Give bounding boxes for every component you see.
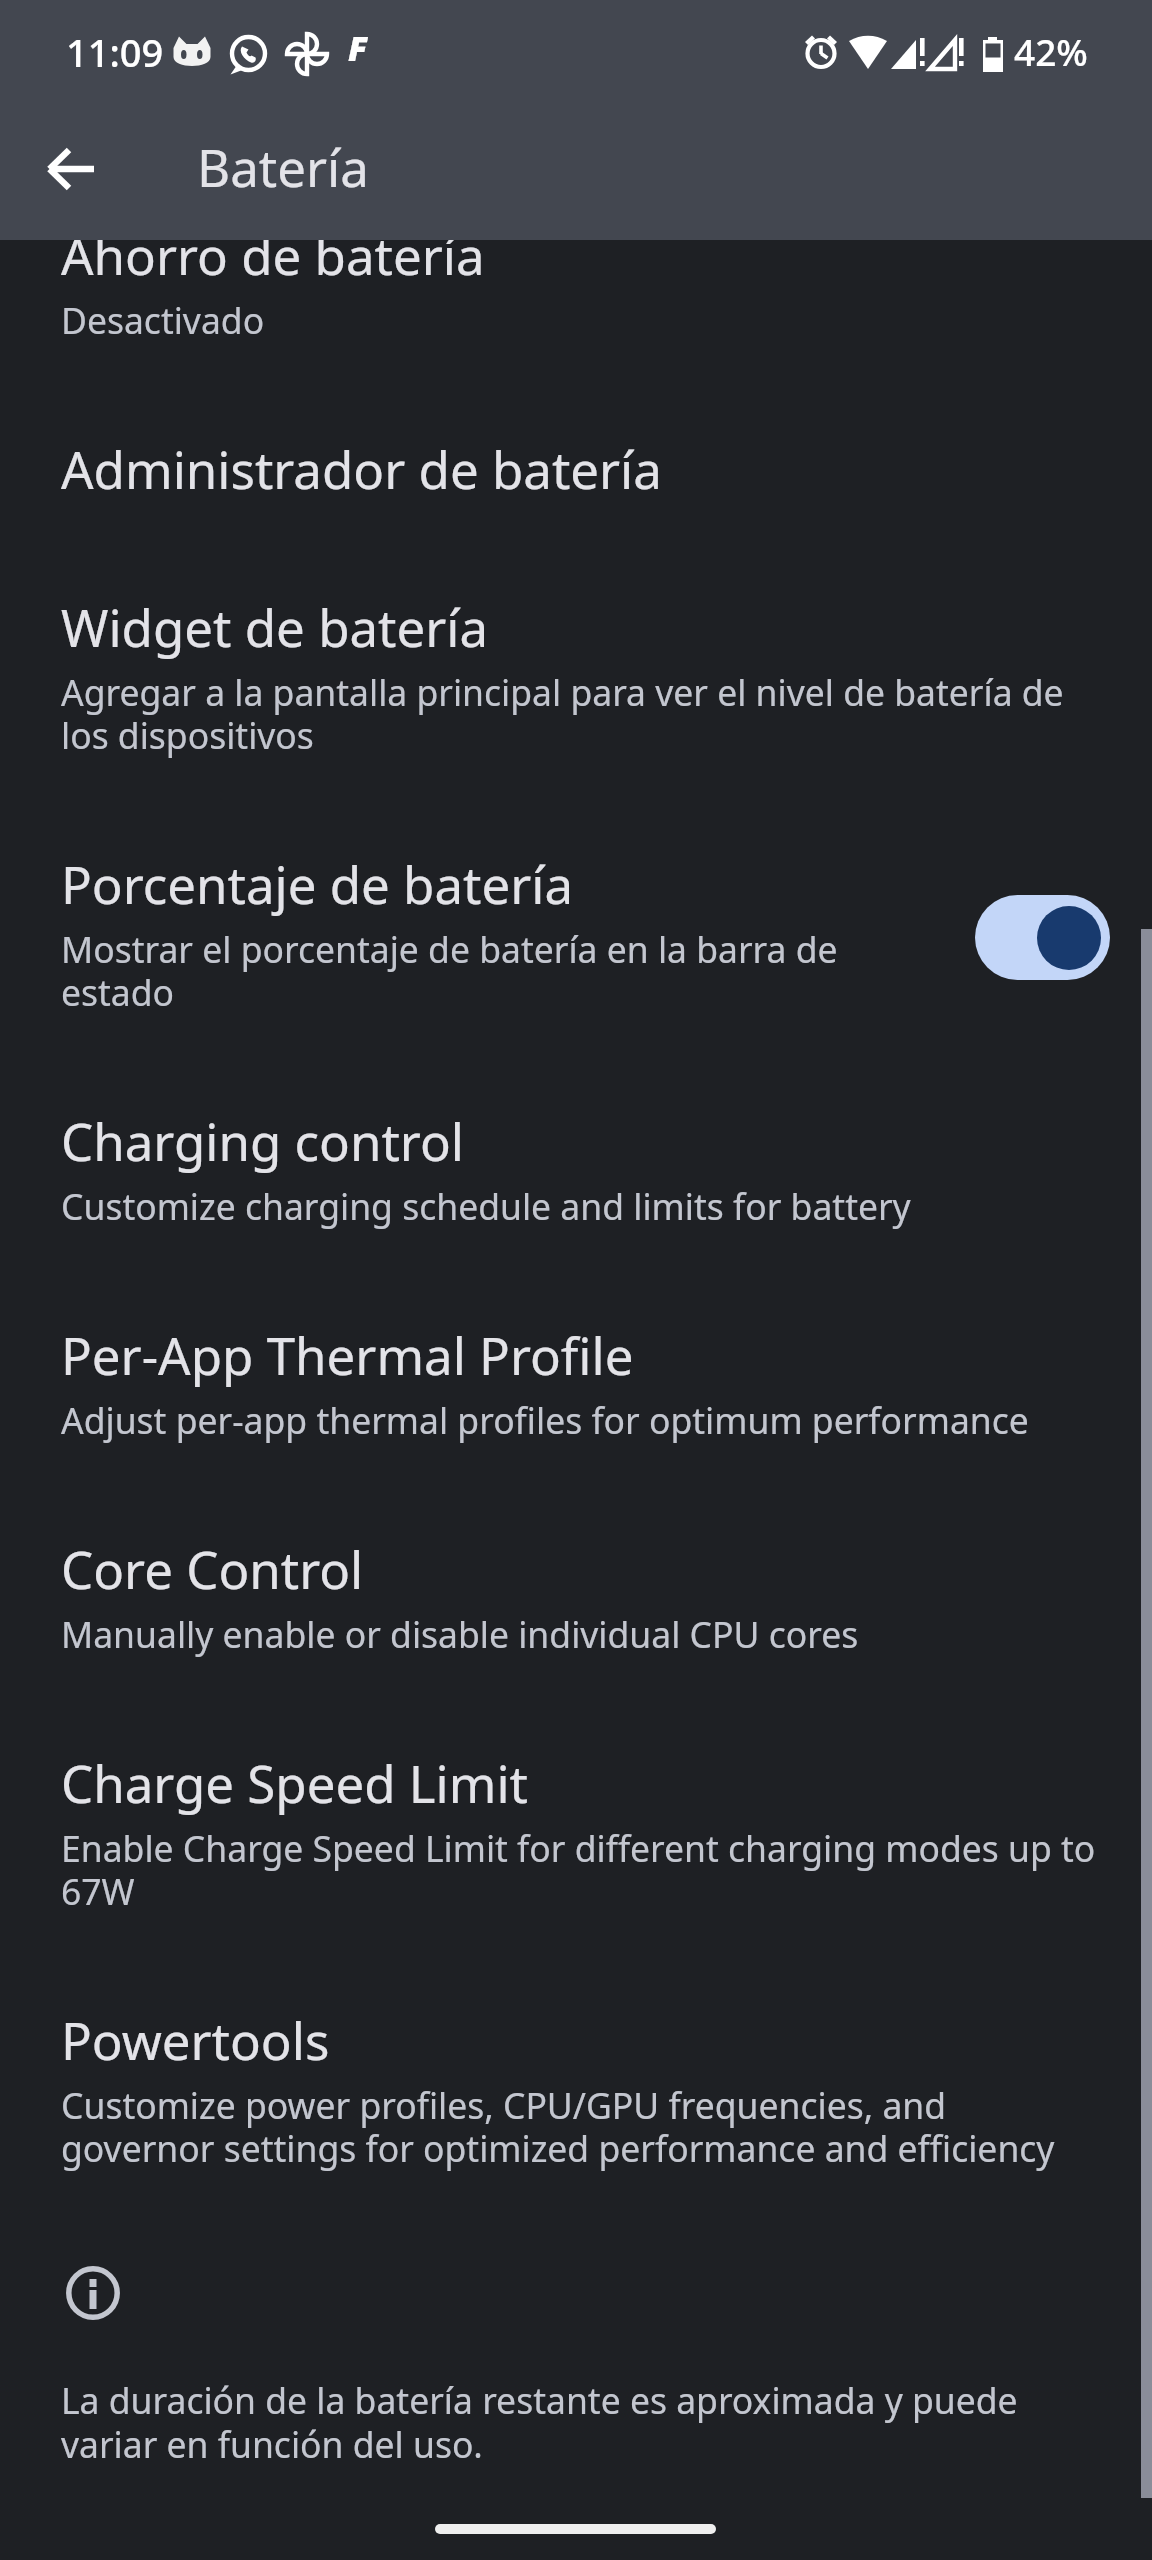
button[interactable]: Widget de batería (0, 551, 1152, 808)
button[interactable]: Ahorro de batería (0, 179, 1152, 393)
button[interactable]: Core Control (0, 1493, 1152, 1707)
staticText: Batería (197, 141, 369, 199)
staticText: Ahorro de batería (61, 229, 485, 287)
staticText: Per-App Thermal Profile (61, 1329, 634, 1387)
button[interactable]: Per-App Thermal Profile (0, 1279, 1152, 1493)
staticText: Manually enable or disable individual CP… (61, 1614, 1101, 1657)
staticText: 11:09 (66, 36, 164, 76)
staticText: Widget de batería (61, 601, 489, 659)
staticText: Agregar a la pantalla principal para ver… (61, 672, 1101, 758)
staticText: Charge Speed Limit (61, 1757, 528, 1815)
staticText: Customize charging schedule and limits f… (61, 1186, 1101, 1229)
staticText: Mostrar el porcentaje de batería en la b… (61, 929, 901, 1015)
staticText: Core Control (61, 1543, 364, 1601)
button[interactable]: Porcentaje de batería (0, 808, 1152, 1065)
button[interactable]: Powertools (0, 1964, 1152, 2221)
staticText: Powertools (61, 2014, 330, 2072)
button[interactable]: Charging control (0, 1065, 1152, 1279)
button[interactable]: Back (23, 121, 119, 217)
staticText: La duración de la batería restante es ap… (61, 2379, 1104, 2467)
staticText: F (348, 33, 368, 69)
button[interactable]: Battery percentage toggle (975, 895, 1110, 980)
staticText: Charging control (61, 1115, 464, 1173)
staticText: Enable Charge Speed Limit for different … (61, 1828, 1101, 1914)
staticText: Adjust per-app thermal profiles for opti… (61, 1400, 1101, 1443)
staticText: Porcentaje de batería (61, 858, 574, 916)
button[interactable]: Charge Speed Limit (0, 1707, 1152, 1964)
button[interactable]: Administrador de batería (0, 393, 1152, 551)
staticText: Desactivado (61, 300, 1101, 343)
staticText: Customize power profiles, CPU/GPU freque… (61, 2085, 1101, 2171)
staticText: 42% (1014, 35, 1088, 75)
staticText: Administrador de batería (61, 443, 662, 501)
